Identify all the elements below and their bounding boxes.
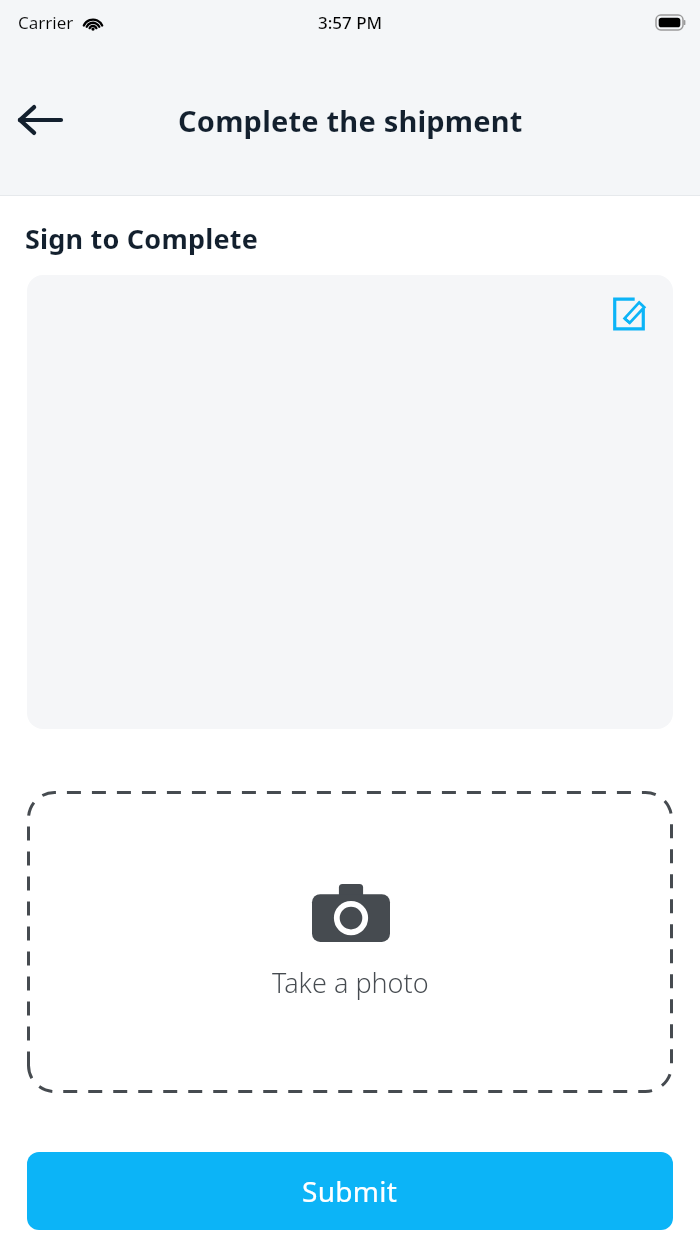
staticText: Complete the shipment: [178, 101, 523, 140]
button[interactable]: Signature area: [27, 275, 673, 729]
staticText: 3:57 PM: [318, 11, 383, 34]
staticText: Sign to Complete: [25, 220, 258, 257]
button[interactable]: Back: [8, 88, 72, 152]
staticText: Take a photo: [272, 964, 429, 1001]
button[interactable]: Take a photo: [27, 791, 673, 1093]
button[interactable]: Submit: [27, 1152, 673, 1230]
staticText: Carrier: [18, 11, 74, 34]
staticText: Submit: [302, 1172, 398, 1210]
